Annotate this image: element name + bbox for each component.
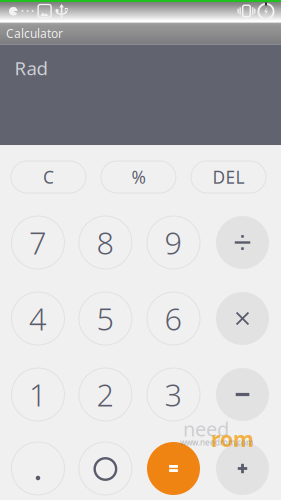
button[interactable]: 7 bbox=[11, 216, 64, 269]
staticText: 1 bbox=[29, 374, 47, 415]
staticText: 8 bbox=[96, 222, 114, 263]
button[interactable]: 5 bbox=[79, 292, 132, 345]
button[interactable]: 4 bbox=[11, 292, 64, 345]
button[interactable]: Equals bbox=[147, 442, 200, 495]
button[interactable]: % bbox=[101, 161, 176, 193]
staticText: 6 bbox=[164, 298, 182, 339]
button[interactable]: C bbox=[11, 161, 86, 193]
staticText: need bbox=[183, 415, 229, 442]
staticText: C bbox=[43, 165, 54, 188]
button[interactable]: 3 bbox=[147, 368, 200, 421]
staticText: % bbox=[131, 165, 145, 188]
button[interactable]: DEL bbox=[191, 161, 266, 193]
staticText: 2 bbox=[96, 374, 114, 415]
staticText: www.needrom.com bbox=[180, 437, 253, 448]
staticText: 9 bbox=[164, 222, 182, 263]
button[interactable]: 9 bbox=[147, 216, 200, 269]
staticText: Rad bbox=[14, 55, 47, 80]
button[interactable]: Multiply bbox=[216, 292, 269, 345]
staticText: 5 bbox=[96, 298, 114, 339]
staticText: 7 bbox=[29, 222, 47, 263]
button[interactable]: Minus bbox=[216, 368, 269, 421]
button[interactable]: Decimal point bbox=[11, 442, 64, 495]
staticText: DEL bbox=[212, 165, 244, 188]
button[interactable]: 2 bbox=[79, 368, 132, 421]
button[interactable]: Plus bbox=[216, 442, 269, 495]
staticText: 4 bbox=[29, 298, 47, 339]
staticText: 3 bbox=[164, 374, 182, 415]
button[interactable]: 0 bbox=[79, 442, 132, 495]
button[interactable]: 1 bbox=[11, 368, 64, 421]
staticText: Calculator bbox=[6, 25, 63, 41]
staticText: rom bbox=[211, 424, 254, 453]
button[interactable]: Divide bbox=[216, 216, 269, 269]
button[interactable]: 6 bbox=[147, 292, 200, 345]
button[interactable]: 8 bbox=[79, 216, 132, 269]
